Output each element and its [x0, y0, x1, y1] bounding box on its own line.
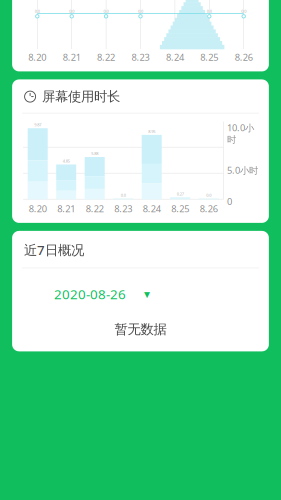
staticText: 8.21 — [63, 51, 81, 63]
staticText: 8.23 — [114, 202, 132, 215]
staticText: 2020-08-26 — [54, 285, 126, 303]
staticText: 8.26 — [200, 202, 218, 215]
staticText: 8.20 — [28, 51, 46, 63]
staticText: 0.0 — [207, 8, 212, 14]
staticText: 8.22 — [86, 202, 104, 215]
staticText: 屏幕使用时长 — [42, 88, 120, 105]
staticText: 0 — [227, 195, 232, 207]
staticText: 0.0 — [138, 8, 143, 14]
staticText: 8.25 — [200, 51, 218, 63]
staticText: 8.24 — [143, 202, 161, 215]
staticText: 8.24 — [166, 51, 184, 63]
staticText: 0.0 — [69, 8, 74, 14]
staticText: 近7日概况 — [24, 241, 84, 259]
staticText: 8.22 — [97, 51, 115, 63]
staticText: 8.20 — [29, 202, 47, 215]
staticText: 0.0 — [121, 192, 126, 198]
staticText: 8.95 — [148, 129, 155, 134]
staticText: 0.27 — [177, 191, 184, 197]
staticText: 5.88 — [91, 151, 98, 156]
staticText: 8.26 — [235, 51, 253, 63]
staticText: 8.21 — [57, 202, 75, 215]
staticText: 5.0小时 — [227, 164, 258, 176]
staticText: 0.0 — [104, 8, 109, 14]
staticText: 0.0 — [35, 8, 40, 14]
staticText: 0.0 — [206, 192, 211, 198]
staticText: 8.25 — [171, 202, 189, 215]
staticText: 4.85 — [63, 158, 70, 164]
staticText: 10.0小时 — [227, 121, 254, 145]
staticText: 0.0 — [241, 8, 246, 14]
staticText: 暂无数据 — [114, 321, 166, 337]
staticText: 9.87 — [34, 122, 41, 127]
staticText: 8.23 — [131, 51, 149, 63]
staticText: ▾ — [144, 287, 150, 301]
button[interactable]: 2020-08-26 — [44, 279, 160, 309]
